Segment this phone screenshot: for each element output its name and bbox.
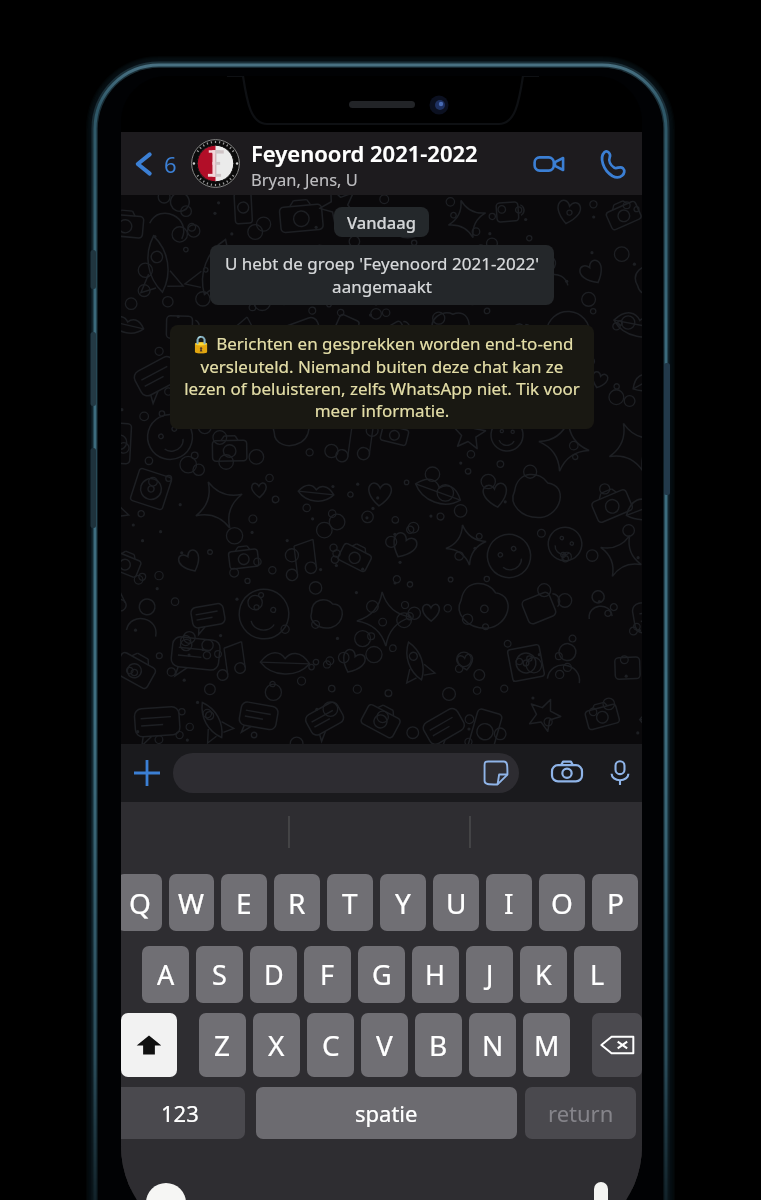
button[interactable]: Video call (525, 140, 573, 188)
button[interactable]: F (304, 946, 351, 1003)
staticText: C (322, 1026, 340, 1064)
button[interactable]: C (307, 1013, 354, 1077)
staticText: K (535, 956, 552, 993)
button[interactable]: Z (199, 1013, 246, 1077)
button[interactable]: N (469, 1013, 516, 1077)
button[interactable]: V (361, 1013, 408, 1077)
button[interactable]: Backspace (592, 1013, 642, 1077)
staticText: Q (129, 884, 151, 922)
button[interactable]: Voice call (589, 140, 637, 188)
button[interactable]: Y (380, 874, 426, 931)
button[interactable]: U (433, 874, 479, 931)
button[interactable]: W (169, 874, 214, 931)
button[interactable]: E (221, 874, 267, 931)
button[interactable]: Vandaag (334, 207, 429, 237)
staticText: M (534, 1026, 560, 1064)
staticText: return (548, 1098, 614, 1128)
button[interactable]: T (327, 874, 373, 931)
button[interactable]: Shift (121, 1013, 177, 1077)
staticText: L (590, 956, 605, 993)
button[interactable]: Q (121, 874, 162, 931)
staticText: S (212, 956, 227, 993)
button[interactable]: 123 (121, 1087, 245, 1139)
staticText: B (429, 1026, 448, 1064)
staticText: D (264, 956, 284, 993)
button[interactable]: Camera (544, 750, 590, 796)
staticText: V (376, 1026, 393, 1064)
button[interactable]: L (574, 946, 621, 1003)
staticText: Feyenoord 2021-2022 (251, 138, 478, 168)
button[interactable]: H (412, 946, 459, 1003)
staticText: T (342, 884, 358, 922)
staticText: Z (214, 1026, 231, 1064)
staticText: U hebt de groep 'Feyenoord 2021-2022' aa… (220, 252, 544, 298)
staticText: 6 (164, 149, 177, 179)
staticText: H (425, 956, 446, 993)
staticText: U (446, 884, 467, 922)
staticText: P (607, 884, 624, 922)
staticText: Bryan, Jens, U (251, 168, 358, 190)
button[interactable]: D (250, 946, 297, 1003)
staticText: G (372, 956, 392, 993)
staticText: spatie (355, 1098, 418, 1128)
button[interactable]: R (274, 874, 320, 931)
button[interactable]: K (520, 946, 567, 1003)
button[interactable]: O (539, 874, 585, 931)
staticText: N (482, 1026, 504, 1064)
button[interactable]: Attach (121, 747, 173, 799)
staticText: O (551, 884, 573, 922)
button[interactable]: I (486, 874, 532, 931)
button[interactable] (173, 753, 519, 793)
button[interactable]: P (592, 874, 638, 931)
button[interactable]: J (466, 946, 513, 1003)
staticText: A (157, 956, 175, 993)
staticText: 123 (161, 1098, 199, 1128)
staticText: E (236, 884, 252, 922)
staticText: R (288, 884, 306, 922)
staticText: F (320, 956, 335, 993)
button[interactable]: 🔒 Berichten en gesprekken worden end-to-… (170, 325, 594, 429)
staticText: X (268, 1026, 285, 1064)
staticText: W (178, 884, 205, 922)
staticText: I (504, 884, 514, 922)
button[interactable]: X (253, 1013, 300, 1077)
button[interactable]: A (142, 946, 189, 1003)
button[interactable]: spatie (256, 1087, 517, 1139)
button[interactable]: S (196, 946, 243, 1003)
staticText: Vandaag (347, 211, 416, 233)
button[interactable]: B (415, 1013, 462, 1077)
button[interactable]: Voice message (600, 753, 640, 793)
staticText: J (486, 956, 494, 993)
button[interactable]: M (523, 1013, 570, 1077)
button[interactable]: U hebt de groep 'Feyenoord 2021-2022' aa… (210, 245, 554, 305)
button[interactable]: 6 (121, 139, 179, 189)
staticText: Y (395, 884, 411, 922)
button[interactable]: G (358, 946, 405, 1003)
staticText: 🔒 Berichten en gesprekken worden end-to-… (180, 332, 584, 422)
button[interactable]: return (525, 1087, 636, 1139)
